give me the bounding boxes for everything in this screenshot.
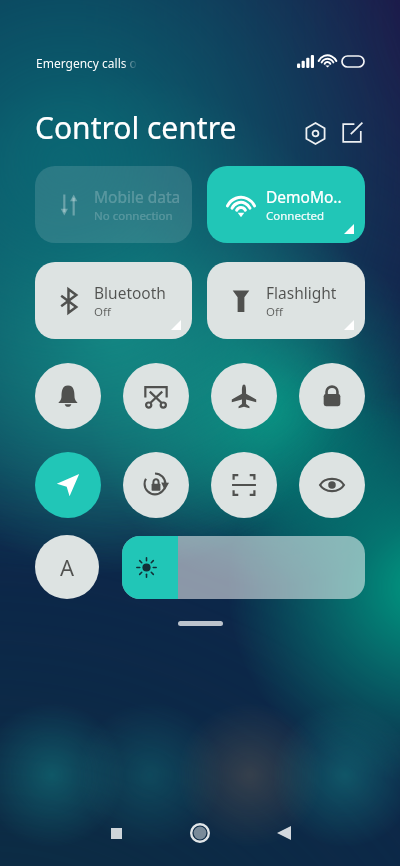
staticText: Bluetooth [94, 282, 166, 303]
staticText: DemoMo.. [266, 186, 342, 207]
staticText: Emergency calls only [36, 55, 154, 71]
button[interactable]: Flashlight [207, 262, 365, 339]
button[interactable]: Reading mode [299, 452, 365, 518]
staticText: Mobile data [94, 186, 181, 207]
staticText: No connection [94, 208, 173, 224]
staticText: A [60, 552, 75, 582]
staticText: Connected [266, 208, 325, 224]
button[interactable]: Auto rotate [123, 452, 189, 518]
staticText: Flashlight [266, 282, 337, 303]
button[interactable]: Home [176, 809, 224, 857]
button[interactable]: Recents [92, 809, 140, 857]
button[interactable]: Screen lock [299, 363, 365, 429]
staticText: Off [94, 304, 111, 320]
button[interactable]: DemoMo.. [207, 166, 365, 243]
button[interactable]: Notifications [35, 363, 101, 429]
staticText: Off [266, 304, 283, 320]
button[interactable]: Mobile data [35, 166, 192, 243]
button[interactable]: Settings [297, 115, 333, 151]
button[interactable]: Screenshot [123, 363, 189, 429]
button[interactable]: Back [260, 809, 308, 857]
button[interactable]: Airplane mode [211, 363, 277, 429]
button[interactable]: Scan [211, 452, 277, 518]
button[interactable]: Brightness [122, 536, 365, 599]
button[interactable]: Edit [334, 115, 370, 151]
staticText: Control centre [35, 107, 237, 148]
button[interactable]: Location [35, 452, 101, 518]
button[interactable]: Bluetooth [35, 262, 192, 339]
button[interactable]: Auto brightness [35, 535, 99, 599]
